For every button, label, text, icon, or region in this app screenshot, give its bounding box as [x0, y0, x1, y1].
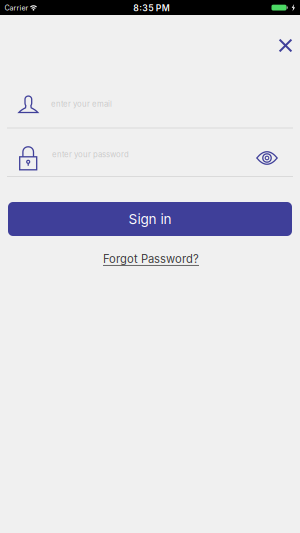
staticText: Carrier	[4, 4, 28, 12]
staticText: 8:35	[133, 3, 153, 13]
button[interactable]: enter your password	[0, 129, 245, 177]
staticText: PM	[156, 3, 170, 13]
button[interactable]: Show password	[245, 129, 289, 177]
staticText: enter your password	[52, 150, 129, 159]
staticText: Forgot Password?	[103, 252, 199, 266]
button[interactable]: Close	[271, 31, 299, 59]
button[interactable]: Forgot Password?	[103, 252, 199, 266]
button[interactable]: Sign in	[8, 202, 292, 236]
button[interactable]: enter your email	[0, 80, 300, 128]
staticText: Sign in	[128, 211, 171, 227]
staticText: enter your email	[51, 99, 112, 109]
